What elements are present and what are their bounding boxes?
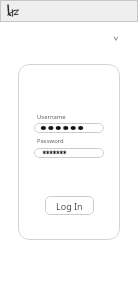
staticText: Username [37, 113, 66, 121]
button[interactable]: Log In [45, 196, 94, 215]
staticText: Password [37, 137, 64, 145]
button[interactable] [34, 148, 104, 158]
staticText: Log In [56, 200, 83, 212]
button[interactable]: 4z home [4, 0, 24, 22]
button[interactable] [34, 123, 104, 133]
button[interactable]: Expand [110, 32, 122, 44]
